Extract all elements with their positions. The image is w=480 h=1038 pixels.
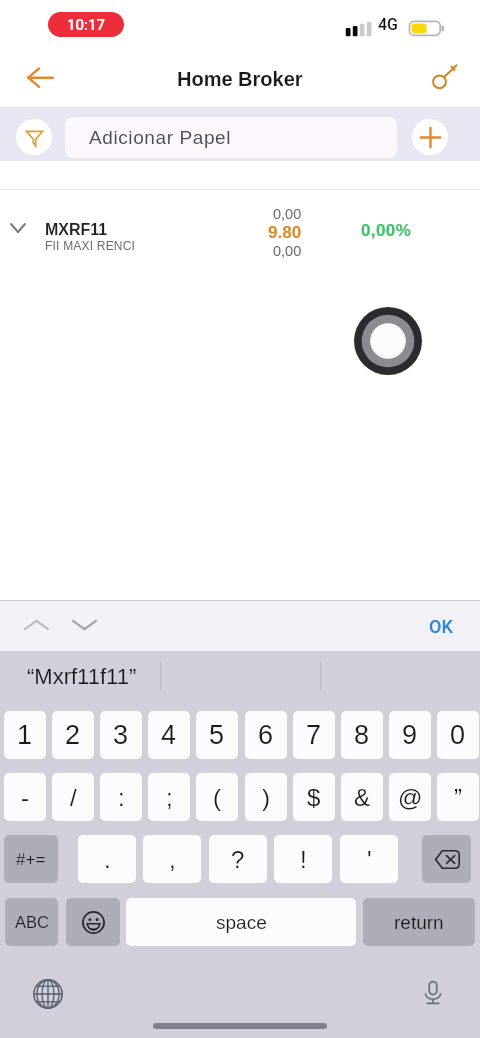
button[interactable]: 5	[196, 711, 238, 759]
button[interactable]: Adicionar Papel	[65, 117, 397, 158]
button[interactable]: OK	[425, 614, 457, 639]
button[interactable]: Dictation	[414, 974, 451, 1011]
staticText: 4	[161, 720, 177, 750]
button[interactable]: Add	[412, 119, 448, 155]
button[interactable]: Change language	[29, 975, 66, 1012]
staticText: OK	[429, 616, 453, 637]
button[interactable]: $	[293, 773, 335, 821]
staticText: MXRF11	[45, 221, 108, 239]
button[interactable]: Next field	[66, 606, 103, 643]
staticText: 4G	[378, 15, 398, 34]
staticText: $	[307, 784, 321, 811]
staticText: )	[262, 784, 270, 811]
staticText: &	[354, 784, 371, 811]
button[interactable]: 3	[100, 711, 142, 759]
staticText: 8	[354, 720, 370, 750]
staticText: 10:17	[67, 16, 106, 34]
staticText: return	[394, 912, 444, 933]
button[interactable]: 8	[341, 711, 383, 759]
button[interactable]: 2	[52, 711, 94, 759]
staticText: ”	[454, 784, 462, 811]
button[interactable]: ABC	[5, 898, 58, 946]
staticText: 7	[306, 720, 322, 750]
staticText: 0,00	[273, 243, 302, 259]
button[interactable]: 6	[245, 711, 287, 759]
staticText: 0,00%	[361, 221, 412, 240]
button[interactable]: 9	[389, 711, 431, 759]
button[interactable]: 4	[148, 711, 190, 759]
button[interactable]: 0	[437, 711, 479, 759]
button[interactable]: @	[389, 773, 431, 821]
button[interactable]: ?	[209, 835, 267, 883]
staticText: '	[367, 846, 372, 873]
staticText: ABC	[15, 913, 49, 931]
button[interactable]: Backspace	[422, 835, 471, 883]
button[interactable]: )	[245, 773, 287, 821]
staticText: 6	[258, 720, 274, 750]
staticText: @	[398, 784, 423, 811]
button[interactable]: Back	[16, 54, 64, 102]
staticText: space	[216, 912, 267, 933]
button[interactable]: Key	[430, 63, 458, 91]
button[interactable]: :	[100, 773, 142, 821]
button[interactable]: ,	[143, 835, 201, 883]
staticText: 3	[113, 720, 129, 750]
staticText: 1	[17, 720, 33, 750]
button[interactable]: 1	[4, 711, 46, 759]
button[interactable]: MXRF11	[0, 190, 480, 252]
staticText: “Mxrf11f11”	[27, 664, 137, 689]
button[interactable]: !	[274, 835, 332, 883]
button[interactable]: #+=	[4, 835, 58, 883]
staticText: 9.80	[268, 223, 302, 242]
button[interactable]: (	[196, 773, 238, 821]
staticText: Adicionar Papel	[89, 127, 232, 148]
staticText: 9	[402, 720, 418, 750]
staticText: 2	[65, 720, 81, 750]
button[interactable]: .	[78, 835, 136, 883]
staticText: /	[70, 784, 77, 811]
staticText: Home Broker	[177, 68, 303, 90]
staticText: -	[21, 784, 29, 811]
button[interactable]: Emoji	[66, 898, 120, 946]
button[interactable]: Filter	[16, 119, 52, 155]
button[interactable]: space	[126, 898, 356, 946]
staticText: 0	[450, 720, 466, 750]
button[interactable]: &	[341, 773, 383, 821]
staticText: ,	[169, 846, 176, 873]
staticText: #+=	[16, 850, 46, 869]
staticText: 5	[209, 720, 225, 750]
staticText: 0,00	[273, 206, 302, 222]
staticText: !	[300, 846, 307, 873]
staticText: FII MAXI RENCI	[45, 239, 136, 252]
staticText: ;	[166, 784, 173, 811]
button[interactable]: '	[340, 835, 398, 883]
staticText: (	[213, 784, 221, 811]
button[interactable]: /	[52, 773, 94, 821]
button[interactable]: ;	[148, 773, 190, 821]
button[interactable]: -	[4, 773, 46, 821]
button[interactable]: Previous field	[18, 606, 55, 643]
staticText: :	[118, 784, 125, 811]
button[interactable]: return	[363, 898, 475, 946]
button[interactable]: ”	[437, 773, 479, 821]
staticText: ?	[231, 846, 245, 873]
staticText: .	[104, 846, 111, 873]
button[interactable]: 7	[293, 711, 335, 759]
